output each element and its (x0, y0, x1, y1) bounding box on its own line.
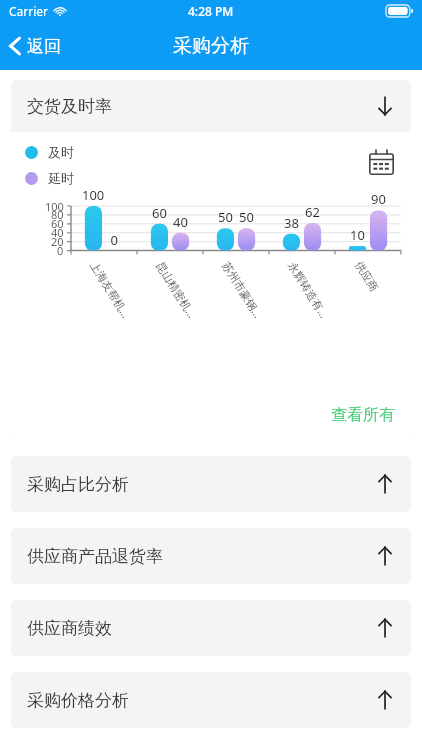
staticText: 返回 (27, 36, 61, 57)
button[interactable]: 返回 (0, 29, 73, 63)
staticText: 供应商产品退货率 (27, 546, 163, 567)
staticText: Carrier (9, 3, 49, 19)
button[interactable]: 采购占比分析 (11, 456, 411, 512)
button[interactable]: 选择日期 (361, 142, 401, 182)
staticText: 及时 (48, 144, 74, 160)
staticText: 采购分析 (173, 34, 249, 58)
staticText: 查看所有 (331, 405, 395, 425)
button[interactable]: 查看所有 (331, 405, 411, 438)
staticText: 延时 (48, 170, 74, 186)
staticText: 4:28 PM (188, 3, 234, 19)
button[interactable]: 采购价格分析 (11, 672, 411, 728)
button[interactable]: 交货及时率 (11, 80, 411, 132)
staticText: 采购占比分析 (27, 474, 129, 495)
button[interactable]: 供应商产品退货率 (11, 528, 411, 584)
button[interactable]: 供应商绩效 (11, 600, 411, 656)
staticText: 采购价格分析 (27, 690, 129, 711)
staticText: 供应商绩效 (27, 618, 112, 639)
staticText: 交货及时率 (27, 96, 112, 117)
